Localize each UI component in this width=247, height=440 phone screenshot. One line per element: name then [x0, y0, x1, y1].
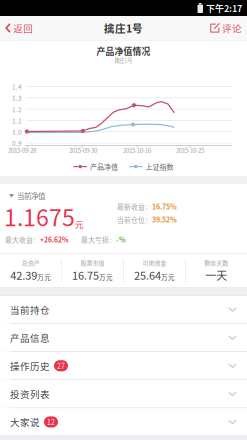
staticText: 股票市值 [81, 258, 105, 267]
button[interactable]: 产品信息 [0, 324, 247, 351]
staticText: 16.75% [152, 201, 177, 212]
staticText: 元 [75, 218, 84, 230]
staticText: 当前仓位： [117, 215, 152, 224]
staticText: 1.0 [12, 127, 22, 137]
staticText: 27 [57, 361, 65, 371]
staticText: 最新收益： [117, 202, 152, 211]
staticText: 42.39 [10, 267, 37, 283]
staticText: 最大收益： [5, 234, 40, 244]
staticText: 产品净值 [90, 161, 118, 172]
staticText: 剩余天数 [204, 258, 228, 267]
staticText: +26.62% [40, 234, 69, 244]
staticText: 万元 [99, 272, 113, 282]
staticText: 一天 [205, 267, 227, 283]
staticText: -% [116, 234, 126, 244]
staticText: 产品信息 [10, 331, 50, 345]
staticText: 上证指数 [146, 161, 174, 172]
staticText: 2015-10-16 [123, 145, 151, 154]
staticText: 1.2 [12, 105, 22, 114]
staticText: 返回 [13, 21, 33, 35]
staticText: 擒庄1号 [114, 56, 132, 64]
staticText: 总资产 [22, 258, 40, 267]
button[interactable]: 操作历史 [0, 352, 247, 379]
staticText: 评论 [222, 21, 242, 35]
staticText: 16.75 [72, 267, 99, 283]
staticText: 产品净值情况 [96, 44, 150, 57]
staticText: 0.9 [12, 138, 22, 148]
button[interactable]: 大家说 [0, 408, 247, 436]
button[interactable]: 当前持仓 [0, 296, 247, 323]
staticText: 2015-09-30 [69, 145, 97, 154]
staticText: 1.1675 [4, 199, 75, 233]
staticText: 万元 [37, 272, 51, 282]
staticText: 39.52% [152, 214, 177, 225]
staticText: 大家说 [10, 415, 40, 429]
staticText: 12 [47, 417, 55, 427]
button[interactable]: 评论 [202, 16, 247, 40]
button[interactable]: 投资列表 [0, 380, 247, 408]
staticText: 下午2:17 [206, 1, 242, 14]
staticText: 25.64 [134, 267, 161, 283]
staticText: 擒庄1号 [104, 20, 143, 36]
staticText: 1.4 [12, 82, 22, 91]
staticText: 操作历史 [10, 359, 50, 373]
staticText: 可用资金 [142, 258, 166, 267]
staticText: 当前持仓 [10, 303, 50, 316]
staticText: 当前净值 [17, 190, 45, 201]
staticText: 1.1 [12, 116, 22, 125]
staticText: 2015-09-28 [8, 145, 36, 154]
staticText: 投资列表 [10, 387, 50, 401]
staticText: 2015-10-25 [176, 145, 204, 154]
staticText: 万元 [161, 272, 175, 282]
staticText: 最大亏损： [81, 234, 116, 244]
staticText: 1.3 [12, 93, 22, 103]
button[interactable]: 返回 [0, 16, 41, 40]
